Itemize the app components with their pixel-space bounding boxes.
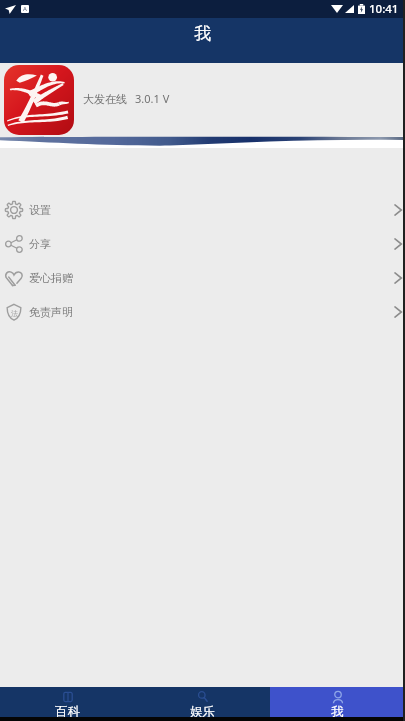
staticText: A <box>23 5 27 13</box>
staticText: 3.0.1 V <box>135 91 170 106</box>
button[interactable]: 我 <box>270 687 405 717</box>
staticText: 分享 <box>29 237 51 251</box>
button[interactable]: 设置 <box>0 193 405 227</box>
button[interactable]: 娱乐 <box>135 687 270 717</box>
button[interactable]: 法 <box>0 295 405 329</box>
staticText: 免责声明 <box>29 305 73 319</box>
staticText: 娱乐 <box>190 704 215 717</box>
staticText: 大发在线 <box>83 92 127 106</box>
staticText: 我 <box>194 23 211 44</box>
staticText: 法 <box>11 309 18 318</box>
staticText: 我 <box>331 704 344 717</box>
staticText: 设置 <box>29 203 51 217</box>
staticText: 10:41 <box>369 1 399 17</box>
button[interactable]: 分享 <box>0 227 405 261</box>
button[interactable]: 百科 <box>0 687 135 717</box>
staticText: 百科 <box>55 704 80 717</box>
staticText: 爱心捐赠 <box>29 271 73 285</box>
button[interactable]: 爱心捐赠 <box>0 261 405 295</box>
